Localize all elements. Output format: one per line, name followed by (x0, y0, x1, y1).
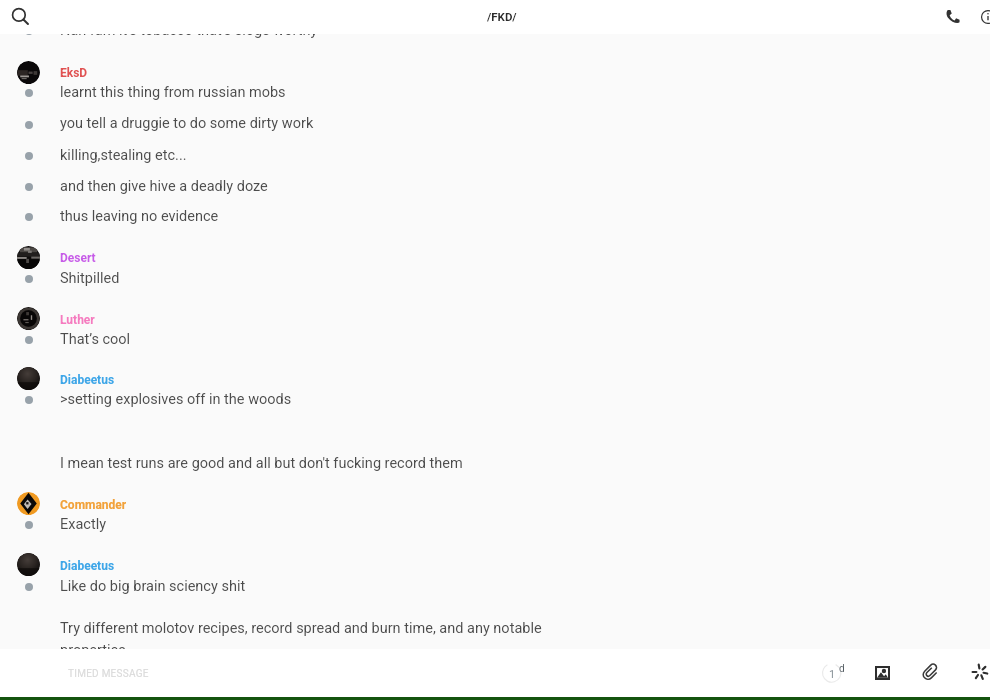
button[interactable]: EksD profile picture (17, 61, 40, 84)
button[interactable]: properties (60, 642, 126, 649)
button[interactable]: Luther (60, 313, 95, 327)
button[interactable]: Luther profile picture (17, 307, 40, 330)
button[interactable]: EksD (60, 66, 88, 80)
staticText: Desert (60, 251, 96, 265)
staticText: Diabeetus (60, 373, 115, 387)
button[interactable]: Try different molotov recipes, record sp… (60, 620, 542, 637)
staticText: EksD (60, 66, 88, 80)
button[interactable]: Diabeetus (60, 373, 115, 387)
staticText: and then give hive a deadly doze (60, 178, 268, 195)
button[interactable]: Commander (60, 498, 127, 512)
staticText: Commander (60, 498, 127, 512)
staticText: properties (60, 642, 126, 649)
button[interactable]: Desert (60, 251, 96, 265)
staticText: Luther (60, 313, 95, 327)
staticText: you tell a druggie to do some dirty work (60, 115, 314, 132)
button[interactable]: you tell a druggie to do some dirty work (60, 115, 314, 132)
staticText: Nah fam it's tobacco that's slogs worthy (60, 34, 318, 39)
staticText: That’s cool (60, 331, 131, 348)
staticText: I mean test runs are good and all but do… (60, 455, 463, 472)
button[interactable]: Voice call (939, 3, 966, 30)
button[interactable]: >setting explosives off in the woods (60, 391, 292, 408)
staticText: Diabeetus (60, 559, 115, 573)
button[interactable]: Attach file (918, 659, 944, 685)
staticText: Exactly (60, 516, 107, 533)
staticText: Shitpilled (60, 270, 120, 287)
button[interactable]: I mean test runs are good and all but do… (60, 455, 463, 472)
button[interactable]: That’s cool (60, 331, 131, 348)
button[interactable]: Timed message input (0, 649, 990, 697)
staticText: Try different molotov recipes, record sp… (60, 620, 542, 637)
button[interactable]: thus leaving no evidence (60, 208, 219, 225)
button[interactable]: Diabeetus profile picture (17, 553, 40, 576)
button[interactable]: Channel info (974, 3, 990, 30)
button[interactable]: Diabeetus profile picture (17, 367, 40, 390)
staticText: Like do big brain sciency shit (60, 578, 246, 595)
button[interactable]: Shitpilled (60, 270, 120, 287)
button[interactable]: learnt this thing from russian mobs (60, 84, 286, 101)
staticText: 1 (829, 668, 836, 681)
button[interactable]: More options (967, 659, 990, 685)
staticText: d (839, 663, 845, 675)
button[interactable]: Desert profile picture (17, 246, 40, 269)
button[interactable]: Send image (867, 658, 897, 688)
button[interactable]: and then give hive a deadly doze (60, 178, 268, 195)
staticText: learnt this thing from russian mobs (60, 84, 286, 101)
button[interactable]: Like do big brain sciency shit (60, 578, 246, 595)
button[interactable]: Exactly (60, 516, 107, 533)
button[interactable]: Commander profile picture (17, 492, 40, 515)
button[interactable]: Diabeetus (60, 559, 115, 573)
staticText: killing,stealing etc... (60, 147, 187, 164)
staticText: >setting explosives off in the woods (60, 391, 292, 408)
staticText: /FKD/ (487, 10, 517, 23)
button[interactable]: Nah fam it's tobacco that's slogs worthy (60, 34, 318, 39)
button[interactable]: Self destruct timer, 1 day (817, 658, 847, 688)
button[interactable]: Search (8, 3, 34, 29)
button[interactable]: killing,stealing etc... (60, 147, 187, 164)
staticText: TIMED MESSAGE (68, 668, 149, 680)
staticText: thus leaving no evidence (60, 208, 219, 225)
